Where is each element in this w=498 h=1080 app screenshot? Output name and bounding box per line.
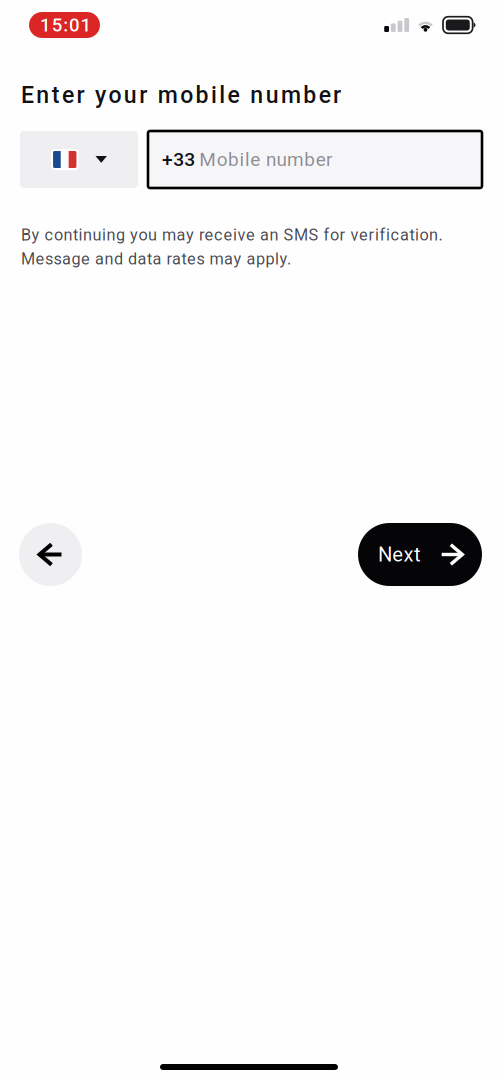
button[interactable]: Select country, France [20,131,138,188]
staticText: +33 [162,148,195,171]
staticText: By continuing you may receive an SMS for… [21,225,442,245]
button[interactable]: Back [19,523,82,586]
button[interactable]: Mobile number [148,131,482,188]
button[interactable]: Next [358,523,482,586]
staticText: Next [378,543,421,566]
staticText: Mobile number [199,148,332,171]
staticText: 15:01 [40,14,91,36]
staticText: Enter your mobile number [21,81,341,108]
staticText: Message and data rates may apply. [21,249,291,269]
